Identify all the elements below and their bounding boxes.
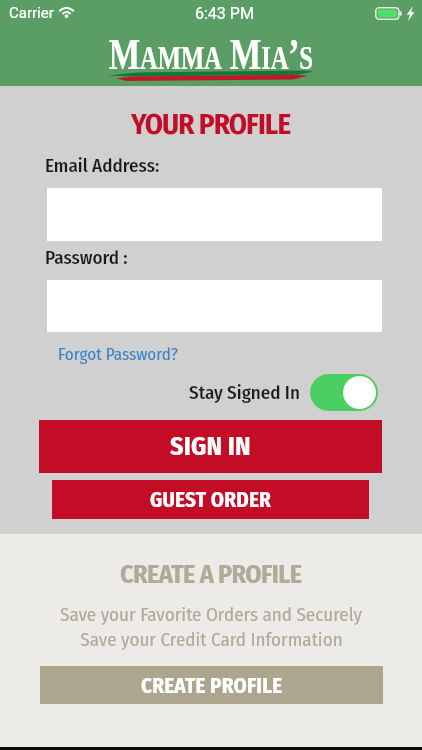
staticText: Stay Signed In bbox=[189, 381, 300, 404]
staticText: Carrier bbox=[9, 4, 54, 22]
button[interactable]: SIGN IN bbox=[39, 420, 382, 473]
staticText: Password : bbox=[45, 246, 128, 269]
staticText: SIGN IN bbox=[170, 431, 251, 462]
staticText: YOUR PROFILE bbox=[131, 107, 291, 142]
staticText: Save your Credit Card Information bbox=[80, 628, 343, 651]
button[interactable]: GUEST ORDER bbox=[52, 480, 369, 519]
button[interactable]: Stay Signed In bbox=[310, 374, 378, 411]
staticText: Email Address: bbox=[45, 154, 160, 177]
staticText: Save your Favorite Orders and Securely bbox=[60, 603, 362, 626]
staticText: CREATE PROFILE bbox=[141, 673, 283, 698]
staticText: MAMMA MIA’S bbox=[109, 29, 313, 78]
button[interactable]: Forgot Password? bbox=[58, 344, 178, 364]
staticText: 6:43 PM bbox=[195, 4, 254, 23]
staticText: GUEST ORDER bbox=[150, 487, 272, 512]
staticText: Forgot Password? bbox=[58, 344, 178, 364]
staticText: CREATE A PROFILE bbox=[120, 559, 302, 590]
button[interactable]: CREATE PROFILE bbox=[40, 666, 383, 704]
